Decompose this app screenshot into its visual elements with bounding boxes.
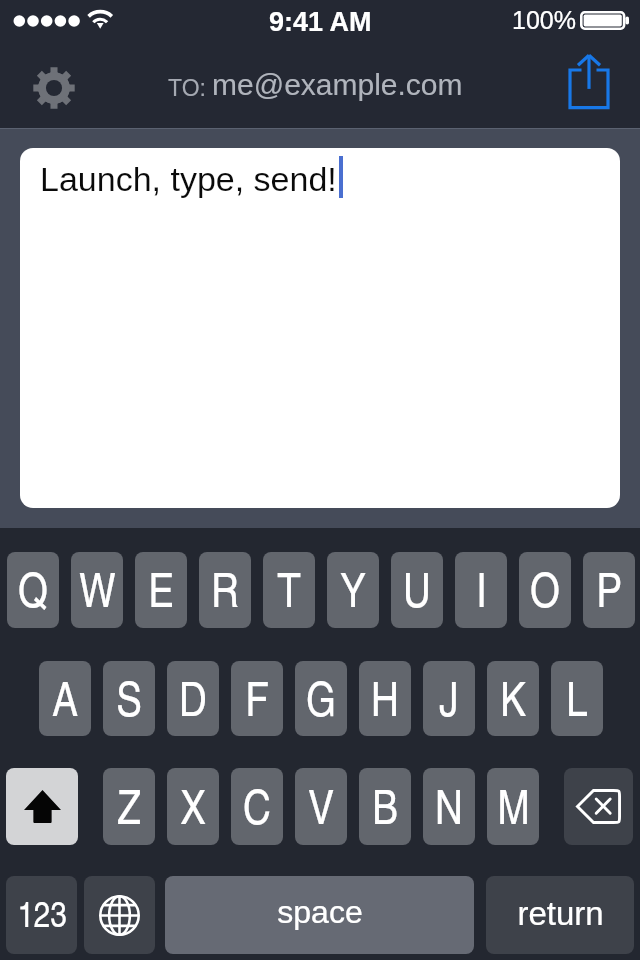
button[interactable]: K (487, 661, 539, 736)
staticText: G (306, 665, 336, 729)
staticText: 9:41 AM (269, 7, 372, 37)
button[interactable]: P (583, 552, 635, 628)
button[interactable]: Q (7, 552, 59, 628)
button[interactable]: Switch keyboard (84, 876, 155, 954)
button[interactable]: S (103, 661, 155, 736)
button[interactable]: E (135, 552, 187, 628)
staticText: Z (117, 773, 141, 837)
staticText: U (403, 556, 431, 620)
button[interactable]: A (39, 661, 91, 736)
staticText: D (179, 665, 207, 729)
button[interactable]: T (263, 552, 315, 628)
button[interactable]: H (359, 661, 411, 736)
button[interactable]: W (71, 552, 123, 628)
staticText: Launch, type, send! (40, 160, 337, 198)
staticText: 123 (17, 888, 67, 937)
button[interactable]: D (167, 661, 219, 736)
staticText: I (476, 556, 487, 620)
staticText: return (517, 895, 604, 932)
staticText: R (211, 556, 239, 620)
button[interactable]: F (231, 661, 283, 736)
button[interactable]: return (486, 876, 634, 954)
button[interactable]: B (359, 768, 411, 845)
button[interactable]: G (295, 661, 347, 736)
staticText: W (79, 556, 116, 620)
button[interactable]: C (231, 768, 283, 845)
staticText: 100% (512, 6, 576, 34)
button[interactable]: V (295, 768, 347, 845)
button[interactable]: Shift (6, 768, 78, 845)
staticText: P (596, 556, 622, 620)
staticText: L (566, 665, 588, 729)
staticText: S (116, 665, 142, 729)
staticText: B (372, 773, 398, 837)
button[interactable]: R (199, 552, 251, 628)
button[interactable]: Settings (25, 58, 83, 118)
button[interactable]: Share (560, 48, 618, 114)
staticText: T (277, 556, 301, 620)
button[interactable]: Backspace (564, 768, 633, 845)
button[interactable]: I (455, 552, 507, 628)
staticText: me@example.com (212, 68, 463, 102)
staticText: O (530, 556, 560, 620)
staticText: A (52, 665, 78, 729)
button[interactable]: Message body (20, 148, 620, 508)
staticText: space (277, 894, 363, 930)
button[interactable]: J (423, 661, 475, 736)
button[interactable]: space (165, 876, 474, 954)
staticText: K (500, 665, 526, 729)
button[interactable]: U (391, 552, 443, 628)
button[interactable]: X (167, 768, 219, 845)
staticText: Y (340, 556, 366, 620)
staticText: TO: (168, 75, 206, 101)
button[interactable]: N (423, 768, 475, 845)
button[interactable]: 123 (6, 876, 77, 954)
staticText: M (497, 773, 530, 837)
button[interactable]: O (519, 552, 571, 628)
button[interactable]: Z (103, 768, 155, 845)
staticText: E (148, 556, 174, 620)
button[interactable]: L (551, 661, 603, 736)
staticText: V (308, 773, 334, 837)
staticText: X (180, 773, 206, 837)
button[interactable]: Y (327, 552, 379, 628)
staticText: N (435, 773, 463, 837)
button[interactable]: M (487, 768, 539, 845)
staticText: J (439, 665, 459, 729)
staticText: F (245, 665, 269, 729)
staticText: H (371, 665, 399, 729)
staticText: C (243, 773, 271, 837)
staticText: Q (18, 556, 48, 620)
